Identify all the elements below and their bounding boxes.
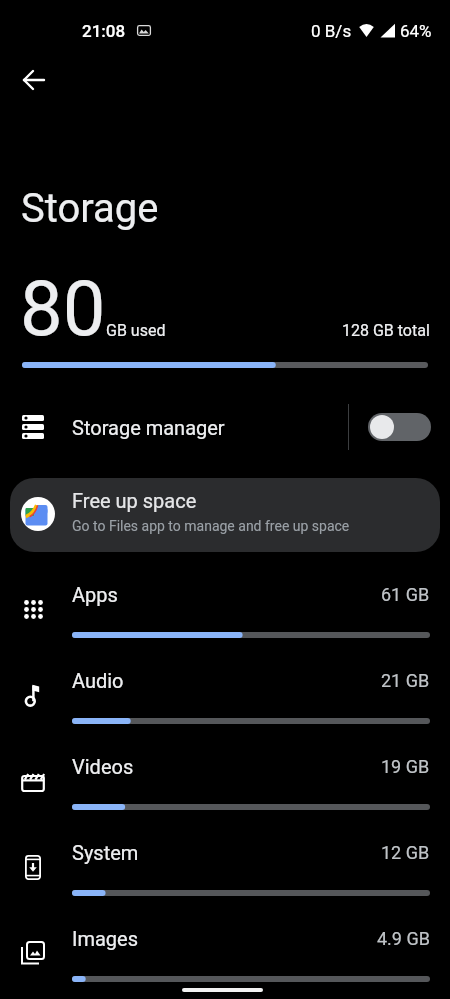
- staticText: 0 B/s: [311, 21, 352, 41]
- staticText: Audio: [72, 669, 124, 692]
- button[interactable]: [14, 60, 54, 100]
- button[interactable]: System: [0, 826, 450, 910]
- staticText: 64%: [400, 21, 432, 41]
- staticText: Storage: [21, 185, 159, 232]
- staticText: System: [72, 841, 139, 864]
- staticText: 61 GB: [381, 584, 430, 605]
- staticText: 12 GB: [381, 842, 430, 863]
- button[interactable]: Videos: [0, 740, 450, 824]
- staticText: 21:08: [82, 21, 126, 41]
- staticText: Apps: [72, 583, 118, 606]
- staticText: Videos: [72, 755, 134, 778]
- staticText: Storage manager: [72, 416, 225, 439]
- button[interactable]: Storage manager: [0, 397, 450, 457]
- staticText: 80: [20, 264, 106, 353]
- staticText: GB used: [106, 321, 166, 340]
- button[interactable]: Apps: [0, 568, 450, 652]
- staticText: Images: [72, 927, 139, 950]
- button[interactable]: [368, 413, 431, 441]
- button[interactable]: Free up space: [10, 478, 440, 552]
- button[interactable]: Audio: [0, 654, 450, 738]
- staticText: 128 GB total: [342, 321, 430, 340]
- button[interactable]: Images: [0, 912, 450, 996]
- staticText: Go to Files app to manage and free up sp…: [72, 518, 350, 534]
- staticText: 4.9 GB: [377, 928, 430, 949]
- staticText: Free up space: [72, 489, 197, 512]
- staticText: 21 GB: [381, 670, 430, 691]
- staticText: 19 GB: [381, 756, 430, 777]
